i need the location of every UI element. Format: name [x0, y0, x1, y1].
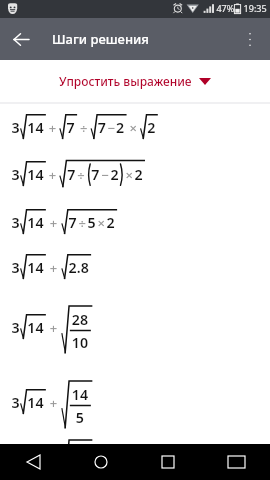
button[interactable]: Упростить выражение [49, 67, 221, 95]
button[interactable]: Back [0, 444, 67, 480]
button[interactable] [0, 379, 270, 438]
staticText: Шаги решения [52, 30, 149, 48]
button[interactable] [0, 104, 270, 151]
button[interactable]: More options [230, 19, 270, 59]
button[interactable]: Home [67, 444, 134, 480]
button[interactable] [0, 244, 270, 304]
button[interactable] [0, 199, 270, 244]
button[interactable] [0, 304, 270, 379]
button[interactable]: Split screen [202, 444, 270, 480]
button[interactable]: Recent apps [134, 444, 202, 480]
button[interactable] [0, 151, 270, 199]
button[interactable]: Back [0, 18, 42, 60]
staticText: Упростить выражение [59, 73, 192, 89]
button[interactable] [0, 438, 270, 444]
